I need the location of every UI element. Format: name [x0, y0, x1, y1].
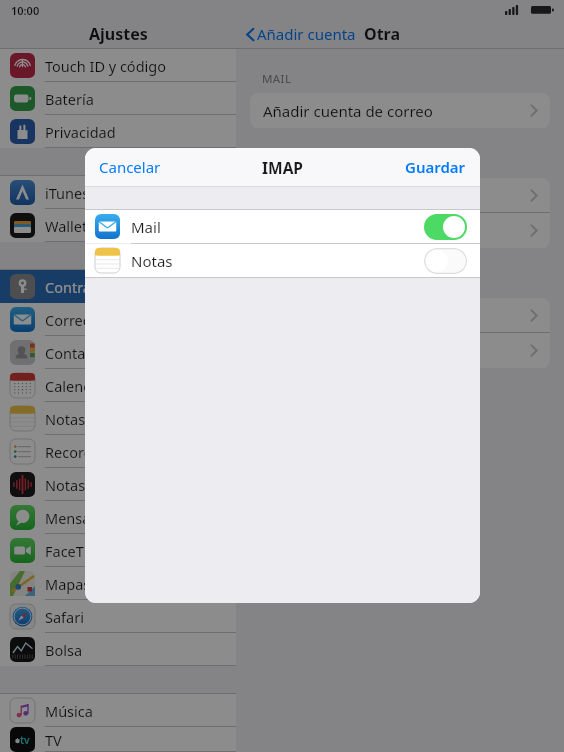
button[interactable]: Wallet y Apple Pay: [0, 209, 236, 242]
button[interactable]: Privacidad: [0, 115, 236, 148]
staticText: Notas: [131, 251, 424, 271]
staticText: Safari: [45, 607, 236, 627]
button[interactable]: Correo: [0, 303, 236, 336]
button[interactable]: Touch ID y código: [0, 49, 236, 82]
staticText: Añadir cuenta CardDAV: [263, 221, 428, 241]
staticText: Correo: [45, 310, 236, 330]
staticText: Touch ID y código: [45, 56, 236, 76]
button[interactable]: Mensajes: [0, 501, 236, 534]
button[interactable]: Contraseñas y cuentas: [0, 270, 236, 303]
staticText: Notas de voz: [45, 475, 236, 495]
staticText: TV: [45, 730, 236, 750]
button[interactable]: Música: [0, 694, 236, 727]
button[interactable]: Añadir cuenta CardDAV: [250, 213, 550, 248]
button[interactable]: Añadir calendario suscrito: [250, 333, 550, 368]
button[interactable]: Añadir cuenta de correo: [250, 93, 550, 128]
staticText: Wallet y Apple Pay: [45, 216, 236, 236]
button[interactable]: Contactos: [0, 336, 236, 369]
staticText: Cancelar: [99, 157, 161, 177]
button[interactable]: FaceTime: [0, 534, 236, 567]
button[interactable]: tv: [0, 727, 236, 752]
staticText: Mensajes: [45, 508, 236, 528]
button[interactable]: Notas: [0, 402, 236, 435]
button[interactable]: Atrás a Añadir cuenta: [244, 20, 358, 48]
button[interactable]: Mapas: [0, 567, 236, 600]
staticText: Contraseñas y cuentas: [45, 277, 236, 297]
staticText: Añadir cuenta LDAP: [263, 186, 403, 206]
staticText: iTunes Store y App Store: [45, 183, 236, 203]
button[interactable]: Safari: [0, 600, 236, 633]
button[interactable]: Calendario: [0, 369, 236, 402]
staticText: Privacidad: [45, 122, 236, 142]
button[interactable]: Notas: [85, 244, 480, 277]
button[interactable]: Guardar: [395, 150, 476, 184]
staticText: Mail: [131, 217, 424, 237]
staticText: Batería: [45, 89, 236, 109]
staticText: MAIL: [262, 71, 292, 87]
button[interactable]: Notas de voz: [0, 468, 236, 501]
button[interactable]: Activado: [424, 214, 467, 240]
staticText: CALENDARIOS: [262, 276, 345, 292]
button[interactable]: Bolsa: [0, 633, 236, 666]
button[interactable]: Recordatorios: [0, 435, 236, 468]
staticText: Música: [45, 701, 236, 721]
button[interactable]: Añadir cuenta CalDAV: [250, 298, 550, 333]
button[interactable]: Desactivado: [424, 248, 467, 274]
staticText: Mapas: [45, 574, 236, 594]
button[interactable]: iTunes Store y App Store: [0, 176, 236, 209]
staticText: Contactos: [45, 343, 236, 363]
staticText: FaceTime: [45, 541, 236, 561]
staticText: CONTACTOS: [262, 156, 332, 172]
staticText: Calendario: [45, 376, 236, 396]
staticText: Ajustes: [89, 23, 148, 45]
button[interactable]: Cancelar: [89, 150, 171, 184]
staticText: Recordatorios: [45, 442, 236, 462]
button[interactable]: Batería: [0, 82, 236, 115]
staticText: IMAP: [262, 157, 303, 178]
staticText: Bolsa: [45, 640, 236, 660]
button[interactable]: Mail: [85, 210, 480, 243]
staticText: tv: [20, 733, 30, 747]
staticText: Añadir cuenta de correo: [263, 101, 433, 121]
staticText: Guardar: [405, 157, 466, 177]
staticText: Otra: [364, 23, 401, 45]
staticText: Añadir cuenta: [257, 24, 356, 44]
staticText: 10:00: [11, 3, 40, 18]
staticText: Notas: [45, 409, 236, 429]
button[interactable]: Añadir cuenta LDAP: [250, 178, 550, 213]
